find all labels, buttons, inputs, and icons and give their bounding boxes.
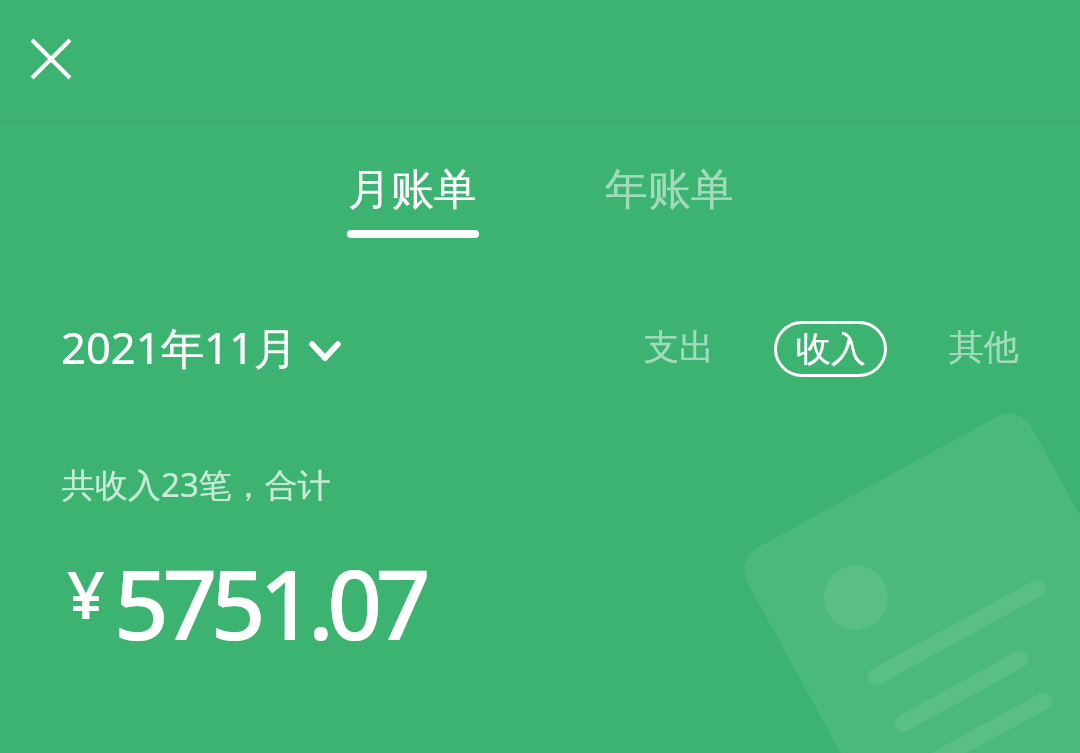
button[interactable]: Close (17, 25, 85, 93)
staticText: 月账单 (348, 163, 477, 217)
staticText: 5751.07 (114, 537, 425, 668)
button[interactable]: 其他 (934, 319, 1034, 375)
button[interactable]: 年账单 (583, 143, 755, 248)
staticText: 年账单 (605, 163, 734, 217)
button[interactable]: 支出 (629, 319, 729, 375)
staticText: ¥ (67, 548, 105, 638)
staticText: 其他 (949, 325, 1019, 369)
button[interactable]: 月账单 (326, 143, 498, 248)
staticText: 收入 (796, 327, 866, 371)
staticText: 2021年11月 (61, 317, 298, 376)
button[interactable]: 2021年11月 (46, 302, 356, 390)
staticText: 支出 (644, 325, 714, 369)
staticText: 共收入23笔，合计 (62, 462, 331, 507)
button[interactable]: 收入 (774, 321, 887, 377)
